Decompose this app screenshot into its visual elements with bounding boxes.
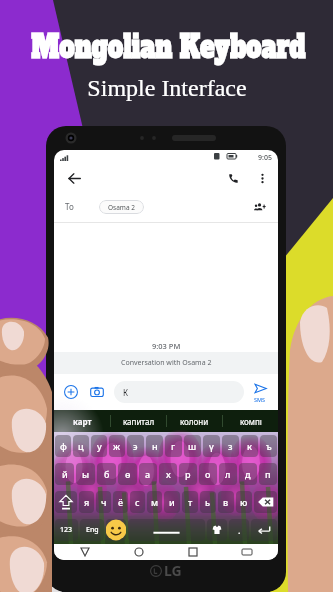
button[interactable]: ъ xyxy=(260,435,277,457)
button[interactable]: Add people xyxy=(251,198,269,216)
button[interactable]: ч xyxy=(96,491,111,513)
button[interactable]: о xyxy=(199,463,217,485)
button[interactable]: ө xyxy=(118,463,137,485)
button[interactable]: карт xyxy=(54,410,110,432)
staticText: с xyxy=(135,496,140,508)
staticText: К xyxy=(123,387,128,398)
staticText: т xyxy=(188,496,193,508)
button[interactable]: Camera xyxy=(86,381,108,403)
button[interactable]: и xyxy=(164,491,180,513)
button[interactable]: Key xyxy=(55,491,77,513)
button[interactable]: Back xyxy=(63,167,85,189)
button[interactable]: Attach xyxy=(60,381,82,403)
button[interactable]: Key xyxy=(207,519,227,541)
button[interactable]: Keyboard xyxy=(239,544,255,560)
staticText: н xyxy=(152,440,158,452)
button[interactable]: компı xyxy=(223,410,278,432)
staticText: Eng xyxy=(86,525,99,535)
staticText: SMS xyxy=(254,396,266,403)
button[interactable]: ё xyxy=(113,491,128,513)
staticText: . xyxy=(238,524,241,536)
staticText: а xyxy=(145,468,151,480)
button[interactable]: ы xyxy=(76,463,95,485)
staticText: Simple Interface xyxy=(87,75,247,102)
staticText: колони xyxy=(180,416,209,427)
button[interactable]: ж xyxy=(109,435,125,457)
button[interactable]: Recents xyxy=(185,544,201,560)
button[interactable]: с xyxy=(130,491,145,513)
button[interactable]: Key xyxy=(106,519,126,541)
button[interactable]: л xyxy=(219,463,237,485)
button[interactable]: капитал xyxy=(111,410,166,432)
staticText: компı xyxy=(240,416,262,427)
button[interactable]: й xyxy=(55,463,74,485)
staticText: ё xyxy=(118,496,124,508)
staticText: у xyxy=(97,440,102,452)
staticText: з xyxy=(228,440,233,452)
button[interactable]: Call xyxy=(222,167,244,189)
button[interactable]: н xyxy=(146,435,163,457)
staticText: г xyxy=(171,440,176,452)
staticText: To xyxy=(65,201,74,212)
staticText: о xyxy=(205,468,211,480)
staticText: в xyxy=(223,496,229,508)
button[interactable]: Osama 2 xyxy=(99,200,144,214)
button[interactable]: ц xyxy=(73,435,89,457)
staticText: э xyxy=(133,440,138,452)
staticText: карт xyxy=(73,416,92,427)
button[interactable]: т xyxy=(182,491,198,513)
staticText: 9:03 PM xyxy=(152,341,181,351)
staticText: Mongolian Keyboard xyxy=(31,26,294,68)
button[interactable]: Key xyxy=(128,519,205,541)
staticText: ъ xyxy=(266,440,272,452)
button[interactable]: х xyxy=(159,463,177,485)
button[interactable]: у xyxy=(91,435,107,457)
button[interactable]: . xyxy=(229,519,249,541)
button[interactable]: б xyxy=(97,463,116,485)
button[interactable]: 123 xyxy=(55,519,78,541)
button[interactable]: ь xyxy=(200,491,216,513)
button[interactable]: Eng xyxy=(80,519,104,541)
staticText: ь xyxy=(205,496,211,508)
staticText: п xyxy=(265,468,271,480)
button[interactable]: р xyxy=(179,463,197,485)
button[interactable]: ү xyxy=(203,435,220,457)
staticText: LG xyxy=(164,561,182,580)
button[interactable]: Key xyxy=(254,491,277,513)
staticText: 123 xyxy=(60,525,73,535)
staticText: б xyxy=(104,468,110,480)
staticText: к xyxy=(247,440,253,452)
button[interactable]: з xyxy=(222,435,239,457)
staticText: ш xyxy=(188,440,197,452)
staticText: д xyxy=(245,468,251,480)
button[interactable]: К xyxy=(114,381,244,403)
staticText: ө xyxy=(125,468,131,480)
staticText: ж xyxy=(113,440,121,452)
staticText: ц xyxy=(78,440,84,452)
button[interactable]: ю xyxy=(236,491,252,513)
button[interactable]: я xyxy=(79,491,94,513)
button[interactable]: д xyxy=(239,463,257,485)
button[interactable]: ш xyxy=(184,435,201,457)
button[interactable]: More options xyxy=(253,169,271,187)
staticText: ю xyxy=(240,496,248,508)
button[interactable]: в xyxy=(218,491,234,513)
button[interactable]: э xyxy=(127,435,144,457)
button[interactable]: г xyxy=(165,435,182,457)
button[interactable]: Send SMS xyxy=(247,382,273,403)
staticText: ы xyxy=(82,468,90,480)
button[interactable]: колони xyxy=(167,410,222,432)
button[interactable]: а xyxy=(139,463,157,485)
staticText: ф xyxy=(60,440,67,452)
button[interactable]: Back xyxy=(77,544,93,560)
staticText: м xyxy=(151,496,159,508)
button[interactable]: ф xyxy=(55,435,71,457)
button[interactable]: Key xyxy=(251,519,277,541)
staticText: я xyxy=(84,496,90,508)
staticText: и xyxy=(169,496,175,508)
button[interactable]: п xyxy=(259,463,277,485)
button[interactable]: к xyxy=(241,435,258,457)
staticText: ч xyxy=(101,496,107,508)
button[interactable]: м xyxy=(147,491,162,513)
button[interactable]: Home xyxy=(131,544,147,560)
